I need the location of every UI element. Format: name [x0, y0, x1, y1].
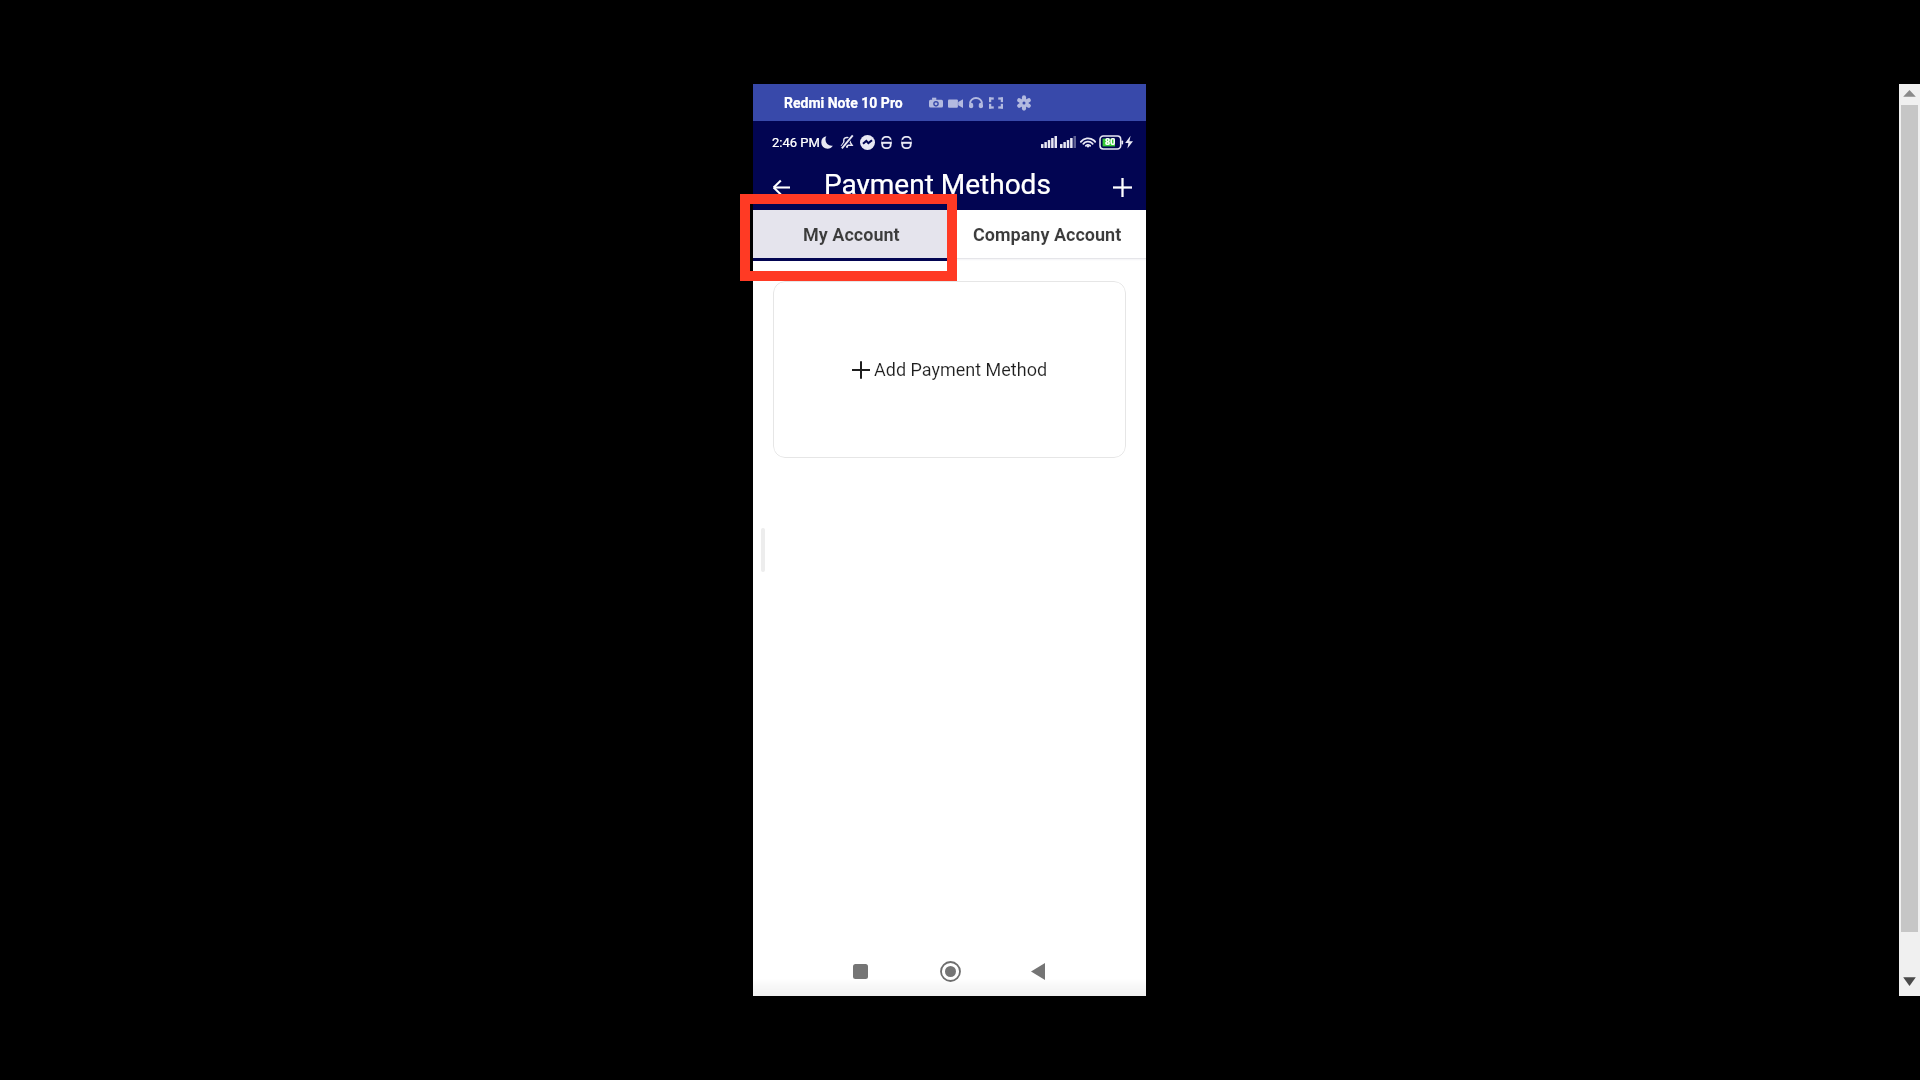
staticText: Payment Methods — [824, 168, 1051, 201]
button[interactable]: Fullscreen — [986, 93, 1006, 113]
button[interactable]: Record video — [945, 93, 965, 113]
button[interactable]: Back — [1018, 951, 1058, 991]
button[interactable]: Company Account — [949, 210, 1146, 258]
button[interactable]: Recent apps — [840, 951, 880, 991]
staticText: My Account — [803, 224, 900, 245]
button[interactable]: Settings — [1014, 93, 1034, 113]
staticText: 80 — [1105, 137, 1116, 148]
staticText: Add Payment Method — [874, 359, 1048, 380]
button[interactable]: My Account — [753, 210, 949, 258]
button[interactable]: Home — [930, 951, 970, 991]
button[interactable]: Add payment method — [1107, 172, 1137, 202]
button[interactable]: Back — [766, 172, 796, 202]
button[interactable]: Audio output — [966, 93, 986, 113]
staticText: Company Account — [973, 224, 1122, 245]
staticText: 2:46 PM — [772, 135, 820, 150]
staticText: Redmi Note 10 Pro — [784, 95, 903, 111]
button[interactable]: Screenshot — [926, 93, 946, 113]
button[interactable]: Add Payment Method — [773, 281, 1126, 458]
